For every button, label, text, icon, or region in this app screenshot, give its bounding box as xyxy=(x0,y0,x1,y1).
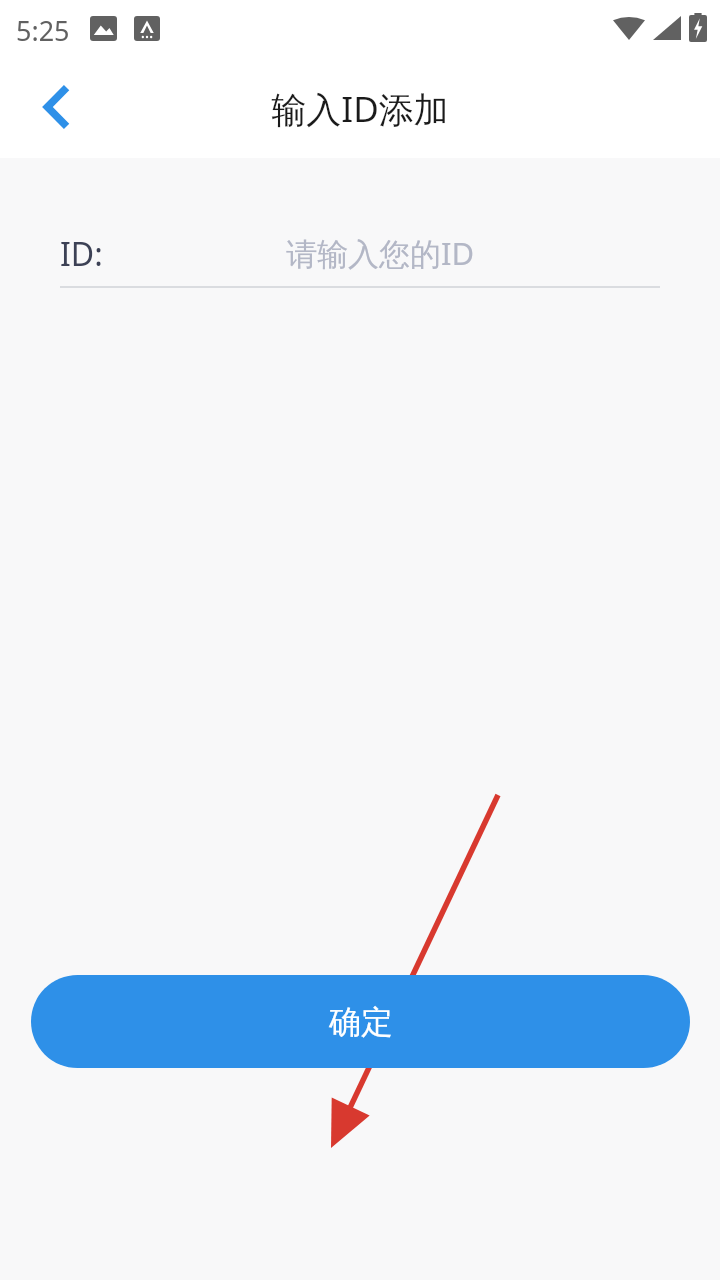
staticText: 确定 xyxy=(329,1002,393,1042)
staticText: 输入ID添加 xyxy=(0,85,720,133)
staticText: ID: xyxy=(60,232,103,276)
staticText: 请输入您的ID xyxy=(286,232,475,274)
button[interactable]: ID: xyxy=(0,218,720,288)
staticText: 5:25 xyxy=(16,12,70,49)
button[interactable]: Back xyxy=(18,77,96,137)
button[interactable]: 确定 xyxy=(31,975,690,1068)
